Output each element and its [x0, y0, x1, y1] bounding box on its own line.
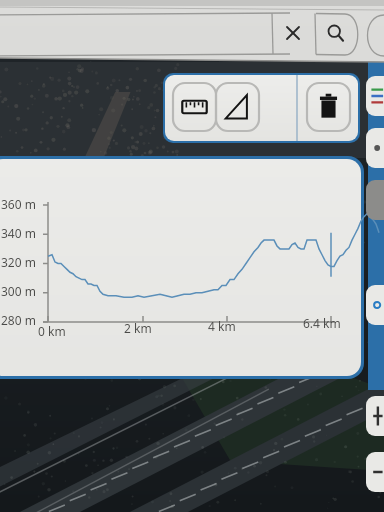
staticText: 0 km	[38, 323, 66, 339]
button[interactable]: Search	[325, 22, 347, 44]
staticText: 320 m	[1, 254, 36, 270]
button[interactable]: More	[366, 180, 384, 220]
button[interactable]: Location	[366, 285, 384, 325]
button[interactable]: Measure distance	[171, 81, 218, 133]
button[interactable]: Map layers	[366, 76, 384, 116]
button[interactable]: Clear search	[282, 22, 304, 44]
staticText: 4 km	[208, 318, 236, 334]
button[interactable]: Zoom out	[366, 452, 384, 492]
staticText: 340 m	[1, 225, 36, 241]
button[interactable]: Map options	[366, 128, 384, 168]
staticText: 360 m	[1, 196, 36, 212]
staticText: 2 km	[124, 320, 152, 336]
staticText: 300 m	[1, 283, 36, 299]
button[interactable]: Measure slope	[214, 81, 261, 133]
staticText: 280 m	[1, 312, 36, 328]
button[interactable]: Zoom in	[366, 396, 384, 436]
staticText: 6.4 km	[303, 315, 341, 331]
button[interactable]: Delete	[305, 81, 352, 133]
